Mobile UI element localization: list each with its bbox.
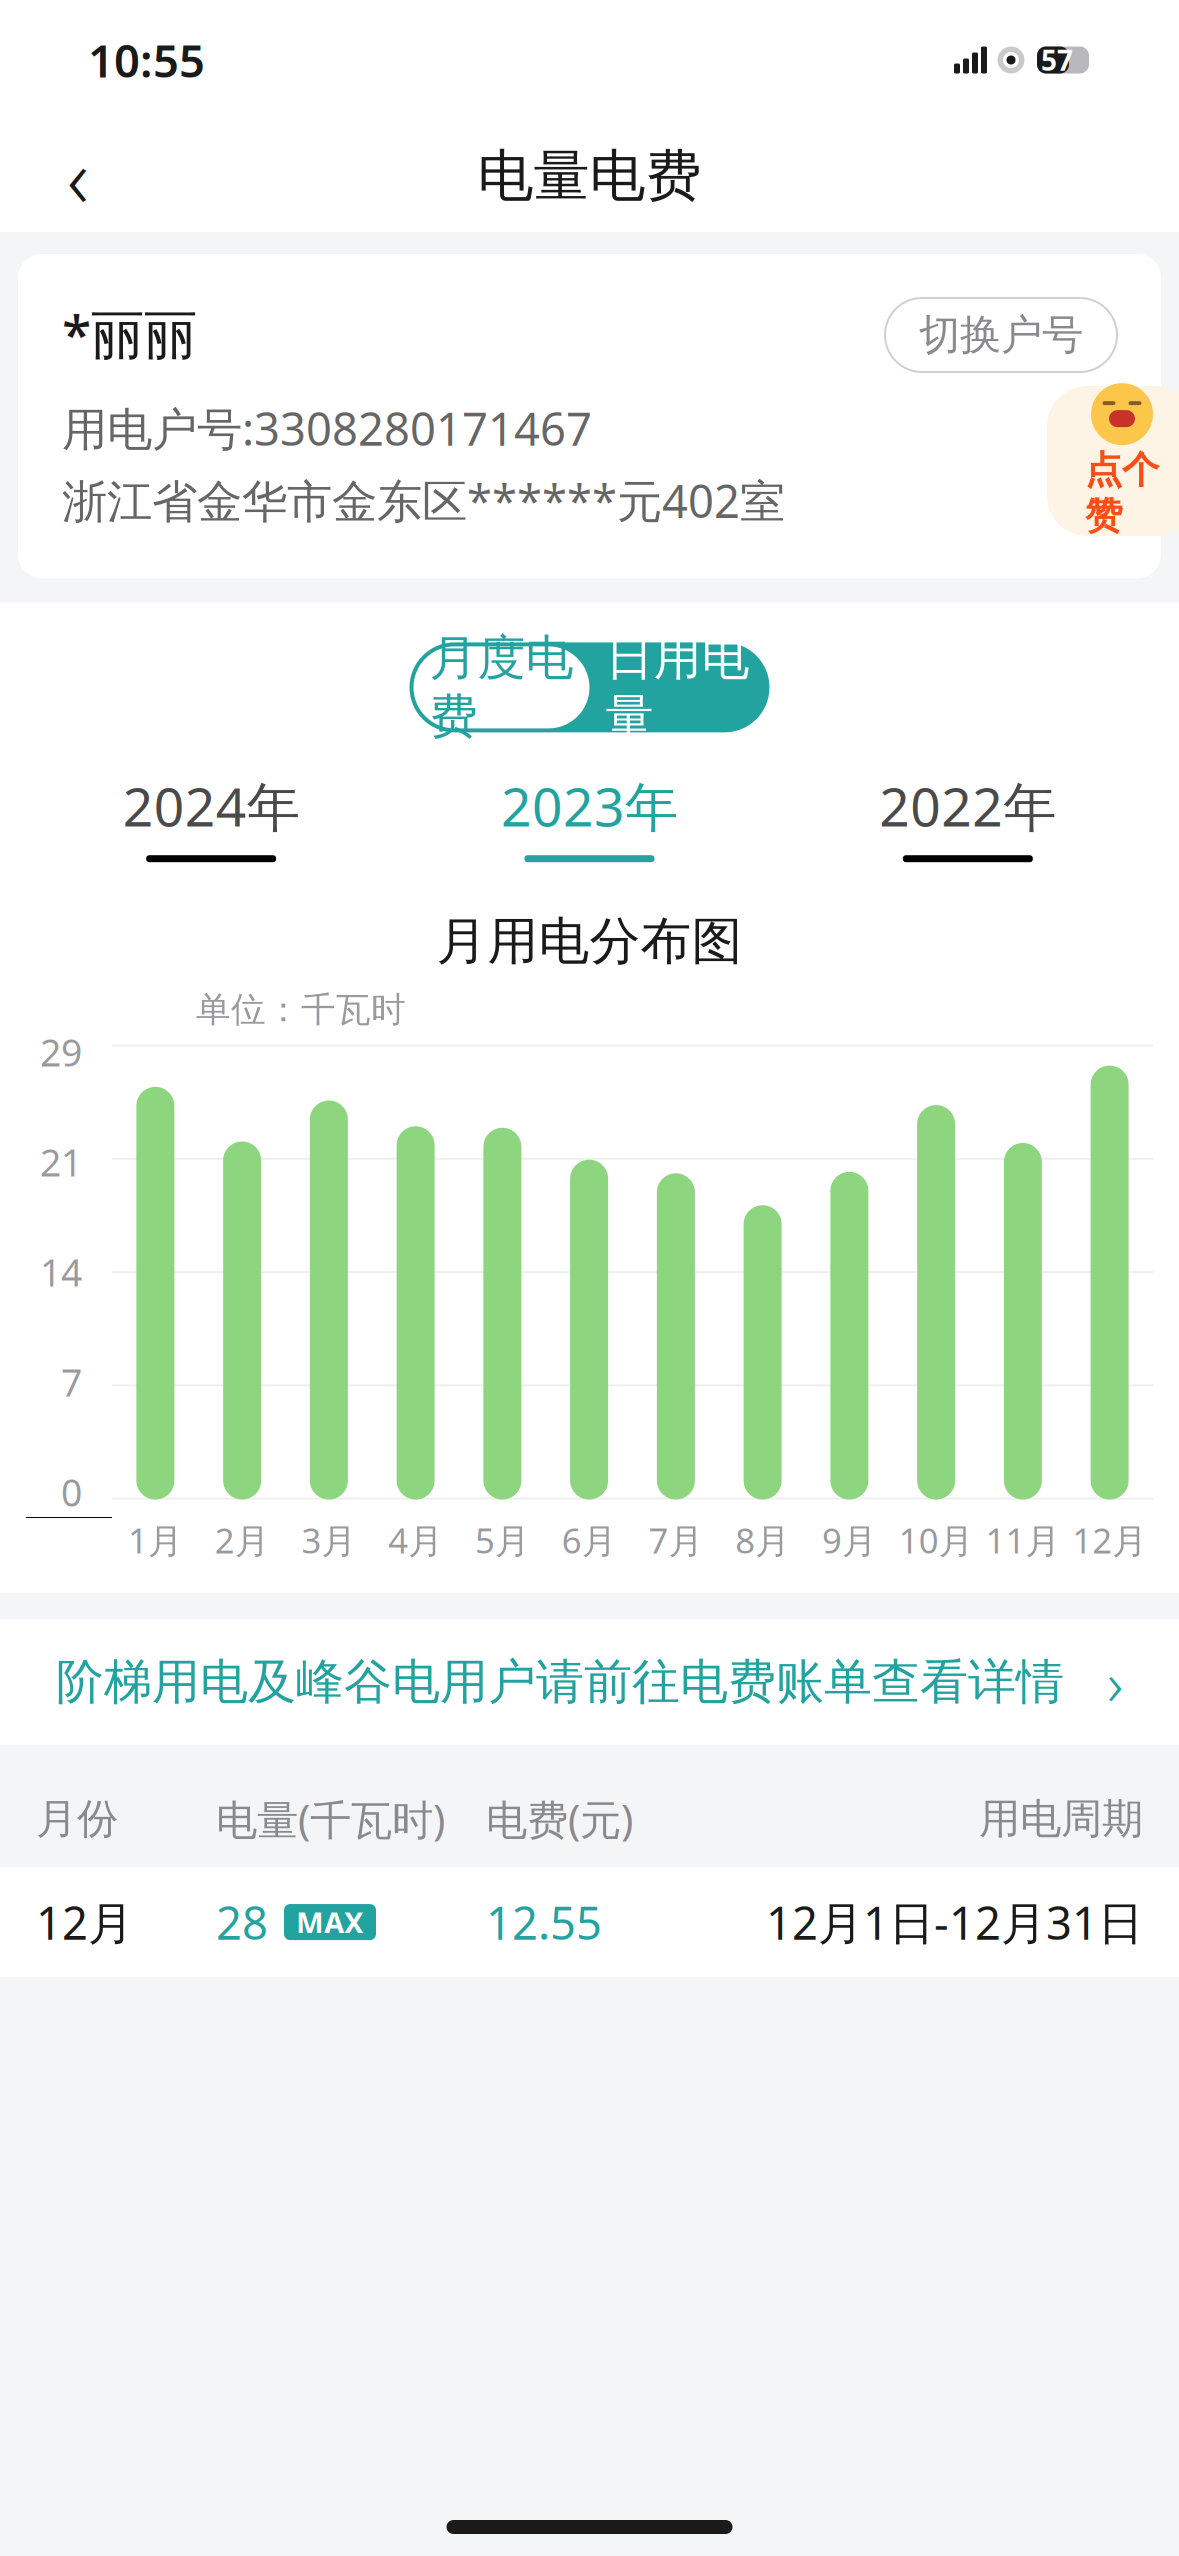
staticText: 电量(千瓦时) [216, 1792, 445, 1846]
staticText: 10:55 [88, 30, 205, 90]
staticText: 2022年 [879, 770, 1056, 841]
button[interactable]: 日用电量 [589, 646, 765, 728]
button[interactable]: 切换户号 [885, 298, 1117, 372]
staticText: 7 [61, 1357, 82, 1407]
staticText: 日用电量 [605, 628, 749, 746]
button[interactable]: 2023年 [400, 770, 779, 862]
staticText: 阶梯用电及峰谷电用户请前往电费账单查看详情 [56, 1653, 1064, 1712]
staticText: 2023年 [501, 770, 678, 841]
button[interactable]: 2022年 [779, 770, 1157, 862]
staticText: 6月 [562, 1517, 617, 1563]
button[interactable]: 12月 [0, 1867, 1179, 1977]
staticText: *丽丽 [62, 298, 197, 369]
staticText: 切换户号 [919, 310, 1083, 360]
staticText: 11月 [985, 1517, 1060, 1563]
staticText: 电量电费 [477, 142, 701, 210]
staticText: 浙江省金华市金东区******元402室 [62, 470, 785, 530]
staticText: 单位：千瓦时 [196, 988, 406, 1031]
button[interactable]: 返回 [30, 128, 126, 224]
staticText: 12月1日-12月31日 [766, 1892, 1143, 1952]
staticText: 月用电分布图 [436, 910, 742, 972]
staticText: 月度电费 [429, 628, 573, 746]
staticText: 2月 [215, 1517, 270, 1563]
staticText: 0 [61, 1467, 82, 1517]
staticText: 12月 [1072, 1517, 1147, 1563]
staticText: 点个赞 [1085, 447, 1159, 539]
staticText: 电费(元) [486, 1792, 633, 1846]
staticText: 14 [40, 1247, 82, 1297]
staticText: 21 [40, 1137, 82, 1187]
staticText: 用电户号:3308280171467 [62, 398, 592, 458]
staticText: 5月 [475, 1517, 530, 1563]
button[interactable]: 阶梯用电及峰谷电用户请前往电费账单查看详情 [0, 1619, 1179, 1745]
staticText: 8月 [735, 1517, 790, 1563]
staticText: 2024年 [123, 770, 300, 841]
staticText: 9月 [822, 1517, 877, 1563]
staticText: 57 [1041, 41, 1073, 79]
button[interactable]: 月度电费 [413, 646, 589, 728]
staticText: 7月 [648, 1517, 703, 1563]
staticText: 12月 [36, 1892, 133, 1952]
staticText: 3月 [301, 1517, 356, 1563]
staticText: 12.55 [486, 1892, 602, 1952]
staticText: 28 [216, 1892, 268, 1952]
staticText: 10月 [899, 1517, 974, 1563]
button[interactable]: 点个赞 [1047, 386, 1179, 536]
staticText: 1月 [128, 1517, 183, 1563]
staticText: 29 [40, 1027, 82, 1077]
staticText: › [1107, 1641, 1123, 1723]
staticText: MAX [296, 1903, 364, 1942]
staticText: 月份 [36, 1794, 118, 1844]
staticText: ‹ [67, 121, 89, 231]
staticText: 4月 [388, 1517, 443, 1563]
staticText: 用电周期 [979, 1794, 1143, 1844]
button[interactable]: 2024年 [22, 770, 400, 862]
